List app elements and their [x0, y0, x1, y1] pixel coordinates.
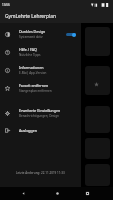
button[interactable]: Informationen	[0, 61, 81, 79]
button[interactable]: Favorit entfernen	[0, 79, 81, 97]
staticText: Dunkles Design	[19, 29, 46, 34]
staticText: Informationen	[19, 65, 44, 70]
staticText: Hilfe / FAQ	[19, 47, 37, 52]
staticText: Letzte Änderung: 22.11.2019 11:33	[16, 171, 65, 175]
staticText: Benachrichtigungen, Design	[19, 114, 59, 118]
staticText: Ausloggen	[19, 128, 38, 133]
staticText: GymLehrte Lehrerplan	[5, 13, 56, 20]
staticText: Erweiterte Einstellungen	[19, 108, 61, 113]
staticText: Stangenplan entfernen	[19, 89, 52, 93]
staticText: E-Mail, App-Version	[19, 71, 47, 75]
button[interactable]: Back	[17, 187, 30, 200]
staticText: Favorit entfernen	[19, 83, 49, 88]
button[interactable]: Recents	[81, 187, 94, 200]
staticText: Nützliche Tipps	[19, 53, 41, 57]
button[interactable]: Ausloggen	[0, 122, 81, 139]
button[interactable]: Home	[51, 187, 64, 200]
button[interactable]: Hilfe / FAQ	[0, 43, 81, 61]
button[interactable]: Erweiterte Einstellungen	[0, 104, 81, 122]
staticText: Systemweit aktiv	[19, 35, 43, 39]
button[interactable]: Dunkles Design	[0, 25, 81, 43]
staticText: 13:56	[2, 3, 10, 7]
